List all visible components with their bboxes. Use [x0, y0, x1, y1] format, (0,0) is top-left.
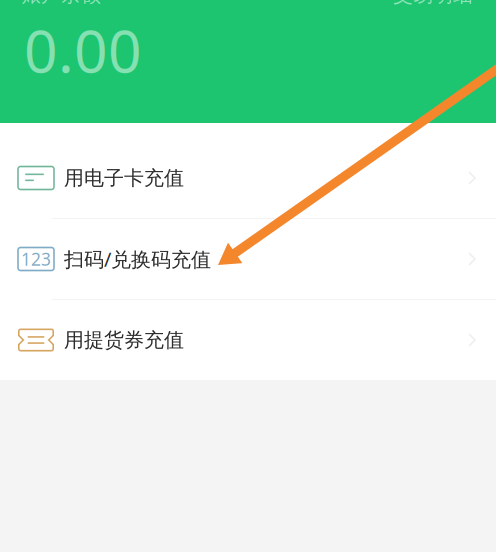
button[interactable]: 交易明细 [393, 0, 473, 7]
staticText: 0.00 [24, 11, 142, 89]
staticText: 交易明细 [393, 0, 473, 7]
staticText: 扫码/兑换码充值 [64, 246, 211, 272]
staticText: 123 [21, 247, 51, 270]
staticText: 用提货券充值 [64, 328, 184, 352]
button[interactable]: 用电子卡充值 [0, 138, 496, 218]
button[interactable]: 扫码/兑换码充值 [0, 219, 496, 299]
button[interactable]: 用提货券充值 [0, 300, 496, 380]
staticText: 账户余额 [21, 0, 101, 7]
staticText: 用电子卡充值 [64, 166, 184, 190]
